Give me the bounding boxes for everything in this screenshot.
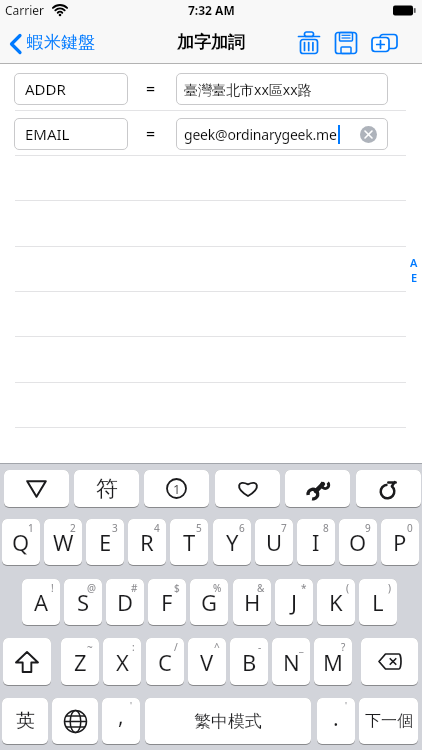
staticText: # [131, 581, 138, 595]
button[interactable] [285, 470, 350, 508]
button[interactable]: Z [61, 638, 99, 686]
staticText: S [77, 587, 90, 617]
staticText: % [213, 581, 222, 595]
button[interactable] [4, 25, 124, 59]
button[interactable]: R [128, 519, 166, 566]
button[interactable] [404, 252, 422, 286]
button[interactable]: 1 [144, 470, 209, 508]
button[interactable]: G [190, 579, 228, 626]
staticText: 0 [407, 521, 413, 535]
button[interactable]: V [188, 638, 226, 686]
staticText: C [158, 647, 172, 677]
button[interactable]: ADDR [14, 73, 128, 105]
button[interactable]: A [22, 579, 60, 626]
button[interactable]: . [317, 698, 355, 745]
staticText: A [34, 587, 49, 617]
staticText: _ [299, 640, 304, 654]
staticText: ? [341, 640, 346, 654]
staticText: @ [87, 581, 96, 595]
button[interactable]: C [146, 638, 184, 686]
button[interactable]: D [106, 579, 144, 626]
staticText: EMAIL [25, 124, 70, 144]
button[interactable]: , [102, 698, 140, 745]
button[interactable]: I [297, 519, 335, 566]
staticText: 7:32 AM [188, 2, 235, 18]
staticText: 8 [323, 521, 329, 535]
button[interactable]: EMAIL [14, 118, 128, 150]
button[interactable]: W [44, 519, 82, 566]
button[interactable]: M [314, 638, 352, 686]
staticText: I [312, 527, 320, 557]
button[interactable]: T [170, 519, 208, 566]
staticText: = [146, 123, 156, 145]
staticText: 7 [281, 521, 287, 535]
staticText: 4 [154, 521, 160, 535]
button[interactable]: geek@ordinarygeek.me [176, 118, 388, 150]
staticText: 加字加詞 [177, 32, 245, 53]
button[interactable]: J [275, 579, 313, 626]
button[interactable]: 臺灣臺北市xx區xx路 [176, 73, 388, 105]
staticText: 1 [28, 521, 34, 535]
button[interactable] [294, 28, 324, 58]
button[interactable]: X [103, 638, 141, 686]
button[interactable]: 下一個 [359, 698, 418, 745]
staticText: ( [346, 581, 349, 595]
staticText: A [410, 255, 418, 270]
button[interactable] [331, 28, 361, 58]
button[interactable]: N [272, 638, 310, 686]
button[interactable]: K [317, 579, 355, 626]
staticText: ^ [214, 640, 220, 654]
staticText: R [140, 527, 154, 557]
staticText: 下一個 [365, 711, 413, 731]
staticText: Carrier [5, 2, 45, 18]
staticText: M [323, 647, 343, 677]
button[interactable]: O [339, 519, 377, 566]
staticText: F [161, 587, 173, 617]
button[interactable]: F [148, 579, 186, 626]
button[interactable]: S [64, 579, 102, 626]
staticText: U [266, 527, 283, 557]
button[interactable] [4, 470, 69, 508]
button[interactable]: P [381, 519, 419, 566]
staticText: Y [226, 527, 239, 557]
button[interactable] [356, 470, 421, 508]
staticText: $ [174, 581, 180, 595]
button[interactable] [215, 470, 280, 508]
button[interactable] [52, 698, 98, 745]
button[interactable]: B [230, 638, 268, 686]
staticText: T [183, 527, 196, 557]
button[interactable]: 繁中模式 [145, 698, 311, 745]
button[interactable] [360, 126, 377, 143]
button[interactable]: 英 [2, 698, 48, 745]
staticText: 符 [96, 475, 118, 503]
button[interactable]: E [86, 519, 124, 566]
staticText: 9 [365, 521, 371, 535]
staticText: G [201, 587, 218, 617]
staticText: N [283, 647, 300, 677]
staticText: 繁中模式 [194, 711, 262, 732]
staticText: 6 [239, 521, 245, 535]
button[interactable]: U [255, 519, 293, 566]
button[interactable]: L [359, 579, 397, 626]
button[interactable]: Q [2, 519, 40, 566]
button[interactable]: 符 [74, 470, 139, 508]
button[interactable]: Y [213, 519, 251, 566]
staticText: ! [51, 581, 54, 595]
staticText: * [301, 581, 307, 595]
staticText: ' [130, 699, 133, 711]
staticText: B [242, 647, 257, 677]
staticText: E [411, 270, 418, 285]
button[interactable]: H [233, 579, 271, 626]
button[interactable] [361, 638, 418, 686]
staticText: O [349, 527, 367, 557]
staticText: Z [74, 647, 87, 677]
button[interactable] [3, 638, 51, 686]
button[interactable] [369, 28, 401, 58]
staticText: 5 [196, 521, 202, 535]
staticText: , [118, 702, 124, 731]
staticText: ADDR [25, 79, 66, 99]
staticText: ' [345, 699, 348, 711]
staticText: 蝦米鍵盤 [27, 32, 95, 53]
staticText: . [333, 704, 339, 733]
staticText: / [174, 640, 178, 654]
